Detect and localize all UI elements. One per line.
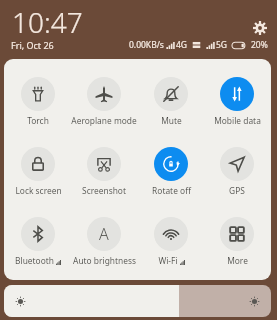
staticText: Torch [27, 115, 49, 126]
staticText: Fri, Oct 26 [11, 39, 54, 51]
staticText: Rotate off [152, 185, 191, 196]
button[interactable]: Settings [253, 21, 267, 35]
staticText: Bluetooth [15, 255, 54, 266]
button[interactable]: More [205, 217, 269, 266]
staticText: Mute [161, 115, 182, 126]
button[interactable]: Torch [6, 77, 70, 126]
staticText: 10:47 [12, 3, 83, 41]
button[interactable]: Bluetooth [6, 217, 70, 266]
button[interactable]: GPS [205, 147, 269, 196]
button[interactable]: Screenshot [72, 147, 136, 196]
staticText: A [99, 223, 109, 245]
staticText: Auto brightness [73, 255, 136, 266]
staticText: Wi-Fi [158, 255, 178, 266]
staticText: Mobile data [214, 115, 261, 126]
button[interactable]: Aeroplane mode [72, 77, 136, 126]
button[interactable]: Mute [139, 77, 203, 126]
staticText: 20% [251, 39, 268, 51]
staticText: Screenshot [82, 185, 126, 196]
staticText: GPS [229, 185, 245, 196]
staticText: More [227, 255, 248, 266]
button[interactable]: Rotate off [139, 147, 203, 196]
staticText: 5G [216, 39, 228, 51]
staticText: Aeroplane mode [71, 115, 137, 126]
button[interactable]: A [72, 217, 136, 266]
button[interactable]: Wi-Fi [139, 217, 203, 266]
button[interactable]: Lock screen [6, 147, 70, 196]
button[interactable]: Brightness [4, 285, 271, 317]
staticText: 4G [176, 39, 188, 51]
button[interactable]: Mobile data [205, 77, 269, 126]
staticText: Lock screen [15, 185, 62, 196]
staticText: 0.00KB/s [129, 39, 164, 51]
